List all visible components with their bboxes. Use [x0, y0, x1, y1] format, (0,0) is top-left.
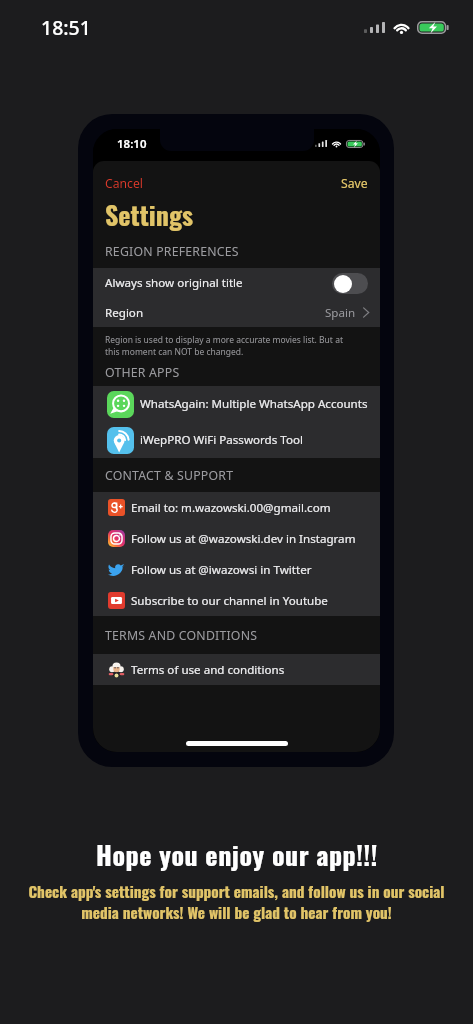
staticText: 18:51 — [41, 14, 91, 41]
staticText: TERMS AND CONDITIONS — [105, 627, 258, 644]
staticText: Follow us at @wazowski.dev in Instagram — [131, 531, 356, 547]
staticText: Check app's settings for support emails,… — [10, 880, 463, 923]
staticText: Hope you enjoy our app!!! — [96, 835, 378, 874]
staticText: 18:10 — [117, 136, 147, 152]
staticText: OTHER APPS — [105, 364, 180, 381]
staticText: Email to: m.wazowski.00@gmail.com — [131, 500, 331, 516]
button[interactable]: iWepPRO WiFi Passwords Tool — [93, 422, 380, 458]
staticText: iWepPRO WiFi Passwords Tool — [140, 432, 303, 448]
staticText: Cancel — [105, 175, 143, 192]
staticText: REGION PREFERENCES — [105, 243, 239, 260]
button[interactable]: Save — [341, 175, 368, 192]
button[interactable]: Email to: m.wazowski.00@gmail.com — [93, 492, 380, 523]
staticText: Region is used to display a more accurat… — [105, 334, 343, 358]
button[interactable]: Region — [93, 298, 380, 327]
staticText: Terms of use and conditions — [131, 662, 285, 678]
staticText: Save — [341, 175, 368, 192]
button[interactable]: WhatsAgain: Multiple WhatsApp Accounts — [93, 386, 380, 422]
staticText: Subscribe to our channel in Youtube — [131, 593, 328, 609]
button[interactable]: Cancel — [105, 175, 143, 192]
staticText: Spain — [325, 305, 356, 321]
button[interactable]: Follow us at @iwazowsi in Twitter — [93, 554, 380, 585]
staticText: CONTACT & SUPPORT — [105, 467, 234, 484]
staticText: Settings — [105, 195, 193, 234]
staticText: Follow us at @iwazowsi in Twitter — [131, 562, 312, 578]
button[interactable]: Always show original title — [93, 268, 380, 298]
staticText: Region — [105, 305, 144, 321]
staticText: WhatsAgain: Multiple WhatsApp Accounts — [140, 396, 368, 412]
button[interactable]: Follow us at @wazowski.dev in Instagram — [93, 523, 380, 554]
button[interactable]: Subscribe to our channel in Youtube — [93, 585, 380, 616]
button[interactable]: Terms of use and conditions — [93, 654, 380, 685]
staticText: Always show original title — [105, 275, 243, 291]
